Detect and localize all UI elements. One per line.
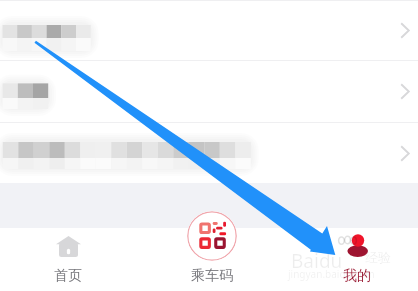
- staticText: 乘车码: [191, 267, 233, 285]
- staticText: 我的: [343, 267, 371, 285]
- staticText: 经验: [365, 249, 391, 265]
- staticText: Baidu: [291, 248, 343, 274]
- staticText: jingyan.baidu.com: [288, 267, 375, 281]
- button[interactable]: 乘车码: [168, 228, 256, 291]
- button[interactable]: [0, 1, 418, 60]
- other: 首页: [56, 236, 81, 258]
- button[interactable]: [0, 123, 418, 183]
- staticText: 首页: [54, 267, 82, 285]
- other: 乘车码: [187, 211, 237, 261]
- button[interactable]: 我的: [313, 228, 401, 291]
- button[interactable]: [0, 61, 418, 122]
- other: 我的: [345, 233, 369, 259]
- button[interactable]: 首页: [24, 228, 112, 291]
